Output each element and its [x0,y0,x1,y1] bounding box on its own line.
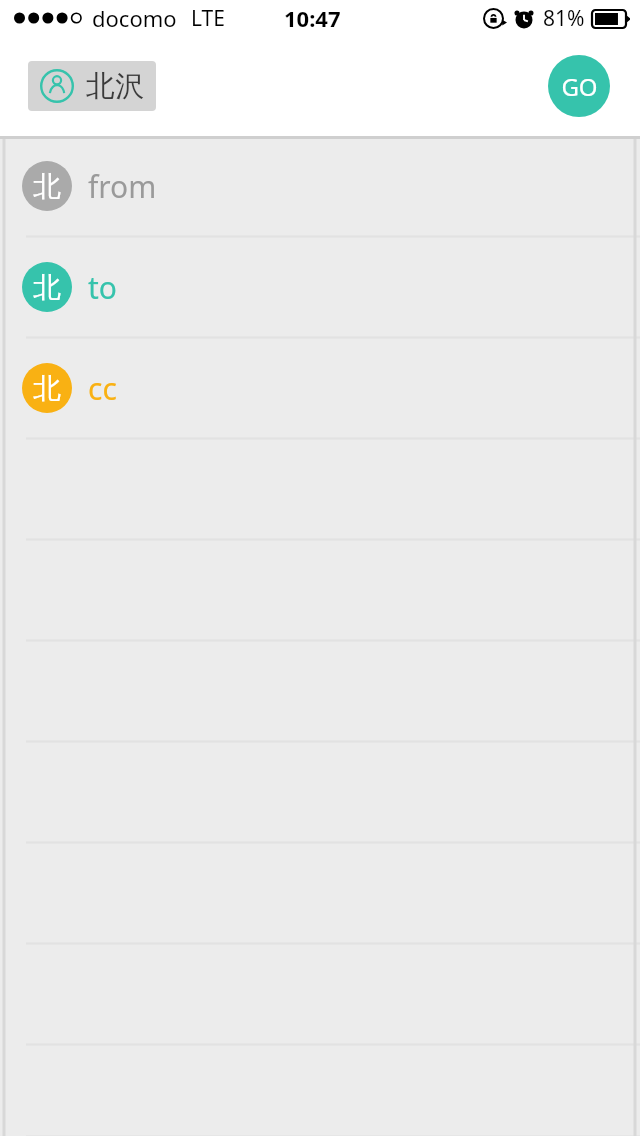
staticText: LTE [191,4,225,33]
staticText: 10:47 [284,3,341,33]
staticText: GO [561,70,598,103]
button[interactable]: 北 [0,237,640,337]
button[interactable]: 北 [0,136,640,236]
button[interactable]: 北 [0,338,640,438]
staticText: to [88,267,117,308]
staticText: 81% [543,4,585,33]
button[interactable]: Contact [28,61,156,111]
staticText: 北沢 [86,68,144,105]
staticText: from [88,166,157,207]
staticText: 北 [33,270,61,305]
staticText: 北 [33,371,61,406]
button[interactable]: GO [548,55,610,117]
staticText: cc [88,368,117,409]
other: Contact [40,69,74,103]
staticText: docomo [92,3,177,33]
staticText: 北 [33,169,61,204]
